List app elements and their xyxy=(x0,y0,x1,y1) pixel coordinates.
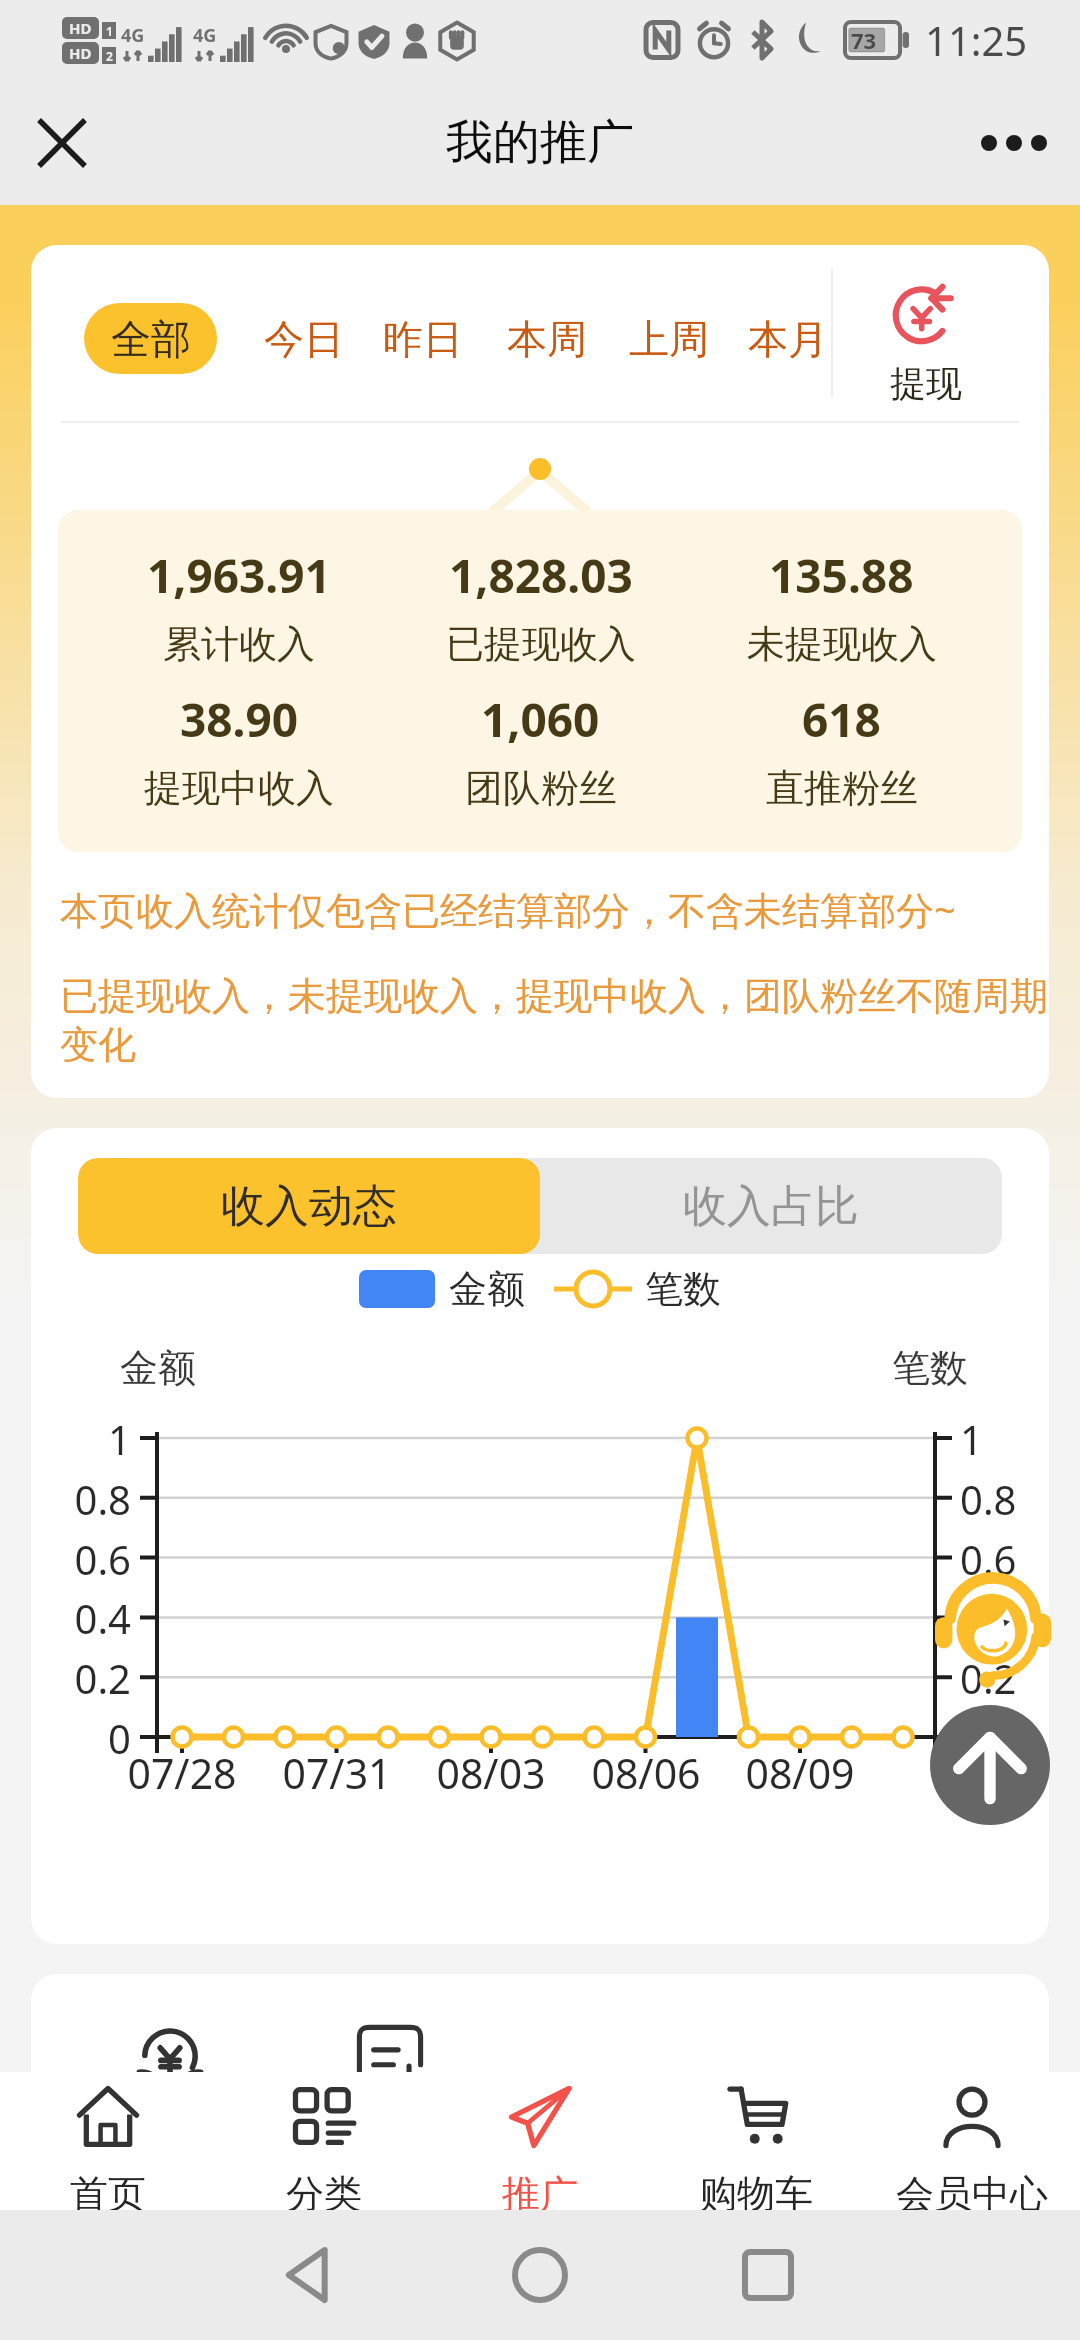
staticText: 推广 xyxy=(502,2170,578,2210)
staticText: 1 xyxy=(960,1412,1049,1466)
button[interactable]: Home xyxy=(502,2210,578,2340)
button[interactable]: 本周 xyxy=(499,303,595,374)
staticText: 0.2 xyxy=(960,1651,1049,1705)
staticText: 0 xyxy=(960,1711,1049,1765)
button[interactable]: 本月 xyxy=(740,303,836,374)
button[interactable]: 收入动态 xyxy=(78,1158,540,1254)
button[interactable]: Customer service xyxy=(935,1568,1051,1688)
staticText: 收入占比 xyxy=(683,1179,859,1234)
staticText: 上周 xyxy=(629,314,709,364)
staticText: 已提现收入，未提现收入，提现中收入，团队粉丝不随周期变化 xyxy=(60,972,1049,1070)
staticText: 08/03 xyxy=(406,1745,576,1801)
button[interactable]: 推广 xyxy=(432,2072,648,2210)
staticText: 直推粉丝 xyxy=(766,764,918,812)
staticText: 0.6 xyxy=(31,1532,131,1586)
button[interactable]: 上周 xyxy=(621,303,717,374)
staticText: 全部 xyxy=(111,314,191,364)
staticText: 38.90 xyxy=(180,688,299,751)
staticText: 1 xyxy=(106,23,113,39)
button[interactable]: 昨日 xyxy=(375,303,471,374)
staticText: 笔数 xyxy=(892,1344,968,1392)
staticText: 已提现收入 xyxy=(446,620,636,668)
staticText: 购物车 xyxy=(699,2170,813,2210)
staticText: 累计收入 xyxy=(163,620,315,668)
button[interactable]: 收入占比 xyxy=(540,1158,1002,1254)
staticText: 会员中心 xyxy=(896,2170,1048,2210)
button[interactable]: 会员中心 xyxy=(864,2072,1080,2210)
staticText: 未提现收入 xyxy=(747,620,937,668)
staticText: 0.8 xyxy=(31,1472,131,1526)
staticText: 1,828.03 xyxy=(449,544,633,607)
staticText: 金额 xyxy=(449,1265,525,1313)
staticText: 73 xyxy=(851,25,877,55)
button[interactable]: Close xyxy=(18,99,106,187)
staticText: 4G xyxy=(121,23,145,48)
staticText: 团队粉丝 xyxy=(465,764,617,812)
staticText: 今日 xyxy=(264,314,344,364)
button[interactable]: Back xyxy=(271,2210,347,2340)
staticText: 08/09 xyxy=(715,1745,885,1801)
staticText: 提现中收入 xyxy=(144,764,334,812)
staticText: 0.8 xyxy=(960,1472,1049,1526)
staticText: 本月 xyxy=(748,314,828,364)
staticText: 0.6 xyxy=(960,1532,1049,1586)
staticText: 分类 xyxy=(286,2170,362,2210)
staticText: 首页 xyxy=(70,2170,146,2210)
staticText: 0.4 xyxy=(31,1591,131,1645)
staticText: HD xyxy=(69,43,92,63)
button[interactable]: Scroll to top xyxy=(930,1705,1050,1825)
staticText: 本周 xyxy=(507,314,587,364)
staticText: 07/28 xyxy=(97,1745,267,1801)
staticText: 1,963.91 xyxy=(147,544,331,607)
staticText: 我的推广 xyxy=(446,113,634,172)
button[interactable]: 全部 xyxy=(84,303,217,374)
button[interactable]: 首页 xyxy=(0,2072,216,2210)
button[interactable]: 今日 xyxy=(256,303,352,374)
staticText: 07/31 xyxy=(252,1745,422,1801)
button[interactable]: 分类 xyxy=(216,2072,432,2210)
button[interactable]: Recent apps xyxy=(730,2210,806,2340)
staticText: 08/06 xyxy=(561,1745,731,1801)
staticText: 提现 xyxy=(890,361,962,406)
staticText: 本页收入统计仅包含已经结算部分，不含未结算部分~ xyxy=(60,883,956,935)
staticText: 2 xyxy=(106,48,113,64)
staticText: 金额 xyxy=(120,1344,196,1392)
staticText: HD xyxy=(69,18,92,38)
staticText: 618 xyxy=(802,688,881,751)
staticText: 0.2 xyxy=(31,1651,131,1705)
staticText: 1,060 xyxy=(481,688,600,751)
staticText: 0.4 xyxy=(960,1591,1049,1645)
staticText: 昨日 xyxy=(383,314,463,364)
button[interactable]: 购物车 xyxy=(648,2072,864,2210)
staticText: 135.88 xyxy=(769,544,914,607)
staticText: 1 xyxy=(31,1412,131,1466)
staticText: 4G xyxy=(193,23,217,48)
staticText: 0 xyxy=(31,1711,131,1765)
staticText: 收入动态 xyxy=(221,1179,397,1234)
button[interactable]: More options xyxy=(970,99,1058,187)
button[interactable]: 提现 xyxy=(833,245,1049,421)
staticText: 笔数 xyxy=(645,1265,721,1313)
staticText: 11:25 xyxy=(925,13,1028,67)
